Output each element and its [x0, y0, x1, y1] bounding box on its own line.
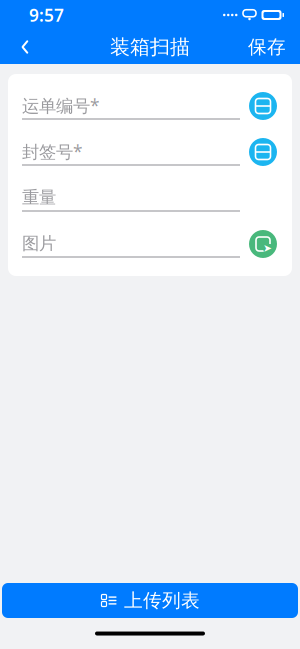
staticText: ➤: [263, 242, 272, 254]
button[interactable]: 保存: [242, 30, 292, 64]
button[interactable]: 返回: [8, 30, 42, 64]
staticText: 封签号*: [22, 140, 83, 163]
button[interactable]: 选择图片: [244, 225, 282, 263]
staticText: 上传列表: [124, 589, 200, 612]
staticText: 重量: [22, 187, 56, 208]
staticText: 保存: [248, 35, 286, 58]
button[interactable]: 上传列表: [2, 583, 298, 618]
button[interactable]: 扫描: [244, 133, 282, 171]
staticText: 图片: [22, 233, 56, 254]
staticText: 运单编号*: [22, 94, 100, 117]
staticText: 装箱扫描: [110, 35, 190, 59]
staticText: 9:57: [29, 3, 64, 26]
button[interactable]: 扫描: [244, 87, 282, 125]
